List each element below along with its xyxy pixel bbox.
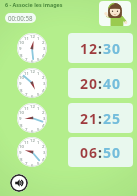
staticText: 5 [37,56,40,61]
staticText: 11 [24,105,29,110]
staticText: 9 [19,149,22,154]
button[interactable]: Mascot [99,1,131,26]
staticText: 6 [31,93,34,98]
button[interactable]: 12 [68,33,133,63]
staticText: 7 [25,91,28,96]
staticText: 1 [37,35,40,40]
button[interactable]: Play sound [10,174,28,192]
staticText: : [98,143,103,162]
staticText: 00:00:58 [8,14,33,22]
staticText: 12 [80,39,98,58]
staticText: 3 [43,115,46,120]
staticText: 10 [19,143,24,148]
staticText: 9 [19,115,22,120]
staticText: 8 [20,156,23,161]
staticText: 12 [30,103,35,108]
staticText: 4 [42,87,45,92]
staticText: 5 [37,91,40,96]
staticText: 7 [25,56,28,61]
button[interactable]: 12 [17,33,47,63]
staticText: 2 [42,74,45,79]
staticText: 10 [19,39,24,44]
staticText: 11 [24,35,29,40]
staticText: 6 - Associe les images [5,1,63,8]
staticText: 12 [30,68,35,73]
staticText: 2 [42,39,45,44]
staticText: 5 [37,160,40,165]
staticText: 4 [42,156,45,161]
staticText: 30 [103,39,121,58]
staticText: 7 [25,126,28,131]
button[interactable]: 12 [17,68,47,98]
staticText: 9 [19,45,22,50]
staticText: : [98,109,103,128]
staticText: 3 [43,80,46,85]
staticText: 1 [37,105,40,110]
staticText: 4 [42,122,45,127]
staticText: 9 [19,80,22,85]
staticText: 1 [37,139,40,144]
button[interactable]: 12 [17,103,47,133]
staticText: 06 [80,143,98,162]
staticText: 6 [31,162,34,167]
button[interactable]: 21 [68,103,133,133]
staticText: 21 [80,109,98,128]
staticText: 8 [20,122,23,127]
staticText: : [98,39,103,58]
staticText: 2 [42,109,45,114]
staticText: 10 [19,109,24,114]
staticText: 10 [19,74,24,79]
button[interactable]: 00:00:58 [5,13,36,23]
staticText: 50 [103,143,121,162]
staticText: 11 [24,70,29,75]
staticText: 12 [30,137,35,142]
staticText: 12 [30,33,35,38]
staticText: 11 [24,139,29,144]
staticText: 8 [20,52,23,57]
staticText: 6 [31,58,34,63]
staticText: 20 [80,74,98,93]
staticText: 4 [42,52,45,57]
staticText: 3 [43,149,46,154]
staticText: 2 [42,143,45,148]
staticText: : [98,74,103,93]
staticText: 7 [25,160,28,165]
staticText: 1 [37,70,40,75]
staticText: 8 [20,87,23,92]
button[interactable]: 06 [68,137,133,167]
button[interactable]: 20 [68,68,133,98]
staticText: 5 [37,126,40,131]
staticText: 40 [103,74,121,93]
button[interactable]: 12 [17,137,47,167]
staticText: 6 [31,128,34,133]
staticText: 25 [103,109,121,128]
staticText: 3 [43,45,46,50]
